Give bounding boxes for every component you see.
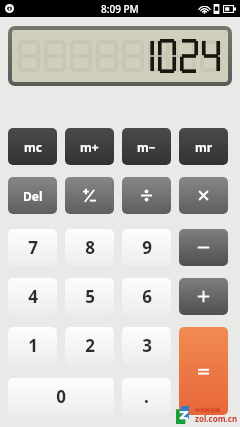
staticText: 0 <box>56 385 66 408</box>
button[interactable]: Plus minus <box>65 177 114 214</box>
button[interactable]: 2 <box>65 327 114 364</box>
staticText: 2 <box>85 334 95 357</box>
button[interactable]: m+ <box>65 128 114 165</box>
button[interactable]: Minus <box>179 229 228 266</box>
button[interactable]: 3 <box>122 327 171 364</box>
button[interactable]: Del <box>8 177 57 214</box>
staticText: Del <box>23 188 43 204</box>
button[interactable]: mr <box>179 128 228 165</box>
button[interactable]: Multiply <box>179 177 228 214</box>
button[interactable]: 9 <box>122 229 171 266</box>
button[interactable]: mc <box>8 128 57 165</box>
staticText: zol.com.cn <box>195 413 238 424</box>
button[interactable]: Divide <box>122 177 171 214</box>
button[interactable]: Plus <box>179 278 228 315</box>
button[interactable]: 7 <box>8 229 57 266</box>
staticText: 4 <box>28 285 38 308</box>
staticText: mc <box>24 139 42 155</box>
button[interactable]: m− <box>122 128 171 165</box>
staticText: m− <box>137 139 156 155</box>
staticText: 3 <box>142 334 152 357</box>
staticText: 7 <box>28 236 38 259</box>
staticText: 5 <box>85 285 95 308</box>
staticText: m+ <box>80 139 99 155</box>
staticText: . <box>144 385 149 408</box>
button[interactable]: . <box>122 378 171 415</box>
button[interactable]: Equals <box>179 327 228 415</box>
button[interactable]: 5 <box>65 278 114 315</box>
staticText: mr <box>195 139 213 155</box>
staticText: 6 <box>142 285 152 308</box>
staticText: 中关村在线 <box>195 407 220 413</box>
staticText: 9 <box>142 236 152 259</box>
staticText: 8:09 PM <box>101 2 139 16</box>
staticText: 1 <box>28 334 38 357</box>
button[interactable]: 8 <box>65 229 114 266</box>
button[interactable]: 4 <box>8 278 57 315</box>
button[interactable]: 1 <box>8 327 57 364</box>
button[interactable]: 6 <box>122 278 171 315</box>
button[interactable]: 0 <box>8 378 114 415</box>
staticText: 8 <box>85 236 95 259</box>
